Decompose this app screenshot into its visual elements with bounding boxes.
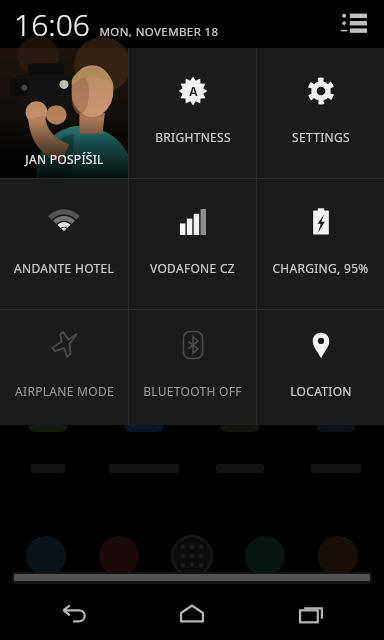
- button[interactable]: LOCATION: [257, 310, 384, 425]
- staticText: BRIGHTNESS: [155, 129, 231, 145]
- staticText: SETTINGS: [292, 129, 350, 145]
- button[interactable]: SETTINGS: [257, 48, 384, 178]
- staticText: VODAFONE CZ: [150, 260, 235, 276]
- button[interactable]: Quick settings list: [334, 4, 374, 44]
- staticText: A: [189, 83, 198, 99]
- staticText: LOCATION: [290, 383, 352, 399]
- staticText: MON, NOVEMBER 18: [99, 24, 219, 40]
- button[interactable]: AIRPLANE MODE: [0, 310, 128, 425]
- staticText: JAN POSPÍŠIL: [25, 151, 104, 167]
- button[interactable]: Back: [29, 588, 119, 640]
- staticText: 16:06: [14, 4, 90, 45]
- button[interactable]: Recents: [266, 588, 356, 640]
- button[interactable]: A: [129, 48, 256, 178]
- staticText: ANDANTE HOTEL: [14, 260, 114, 276]
- button[interactable]: BLUETOOTH OFF: [129, 310, 256, 425]
- button[interactable]: CHARGING, 95%: [257, 179, 384, 309]
- staticText: AIRPLANE MODE: [15, 383, 114, 399]
- staticText: CHARGING, 95%: [272, 260, 369, 276]
- button[interactable]: VODAFONE CZ: [129, 179, 256, 309]
- button[interactable]: JAN POSPÍŠIL: [0, 48, 128, 178]
- staticText: BLUETOOTH OFF: [143, 383, 242, 399]
- button[interactable]: Home: [147, 588, 237, 640]
- button[interactable]: ANDANTE HOTEL: [0, 179, 128, 309]
